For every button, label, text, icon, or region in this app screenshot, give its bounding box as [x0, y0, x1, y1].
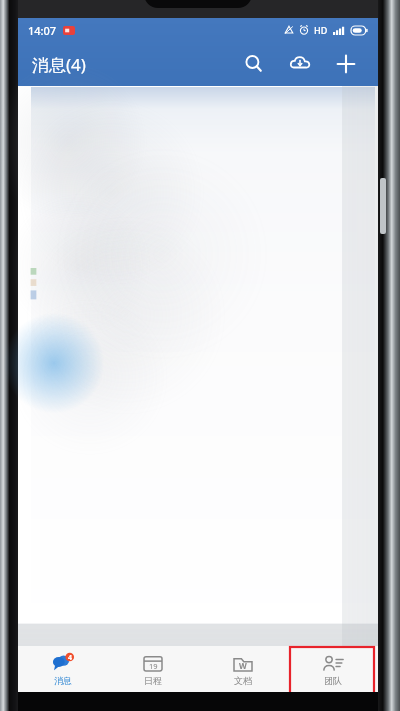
button[interactable]: Add — [326, 44, 366, 84]
staticText: 日程 — [144, 675, 162, 686]
staticText: 19 — [149, 661, 158, 671]
button[interactable]: 团队 — [288, 646, 378, 692]
button[interactable]: 4 — [18, 646, 108, 692]
button[interactable]: 19 — [108, 646, 198, 692]
staticText: 14:07 — [28, 23, 57, 38]
staticText: 消息 — [54, 675, 72, 686]
staticText: 文档 — [234, 675, 252, 686]
staticText: HD — [314, 24, 328, 36]
staticText: 4 — [68, 653, 73, 663]
button[interactable]: Search — [234, 44, 274, 84]
staticText: 团队 — [324, 675, 342, 686]
button[interactable]: W — [198, 646, 288, 692]
button[interactable]: Cloud — [280, 44, 320, 84]
staticText: 消息(4) — [32, 53, 86, 76]
staticText: W — [239, 660, 247, 671]
